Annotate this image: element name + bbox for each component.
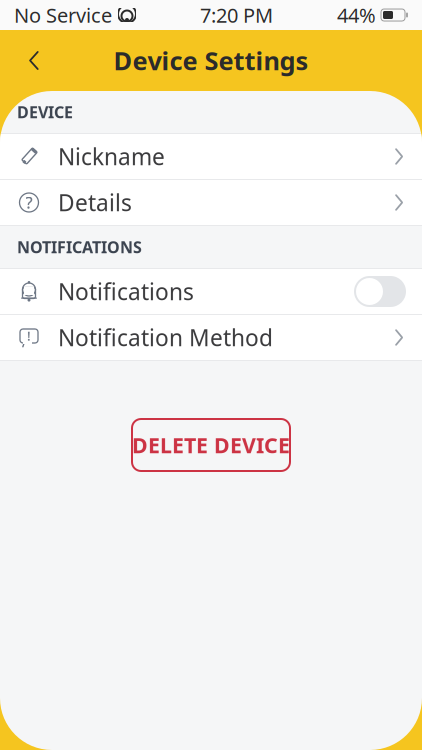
staticText: DELETE DEVICE [132, 431, 290, 459]
staticText: 44% [337, 2, 376, 28]
button[interactable]: ! [0, 315, 422, 360]
staticText: NOTIFICATIONS [17, 236, 142, 258]
staticText: Nickname [58, 141, 165, 171]
staticText: No Service [14, 2, 112, 28]
button[interactable]: Notifications [0, 269, 422, 314]
button[interactable]: DELETE DEVICE [132, 419, 290, 471]
staticText: 7:20 PM [200, 2, 273, 28]
staticText: Notifications [58, 276, 194, 306]
staticText: ? [25, 192, 32, 213]
staticText: DEVICE [17, 101, 73, 123]
button[interactable]: Nickname [0, 134, 422, 179]
button[interactable]: ? [0, 180, 422, 225]
button[interactable]: Back [12, 38, 56, 82]
staticText: Device Settings [113, 44, 308, 77]
staticText: Notification Method [58, 322, 273, 352]
staticText: ! [27, 327, 31, 344]
staticText: Details [58, 187, 132, 217]
